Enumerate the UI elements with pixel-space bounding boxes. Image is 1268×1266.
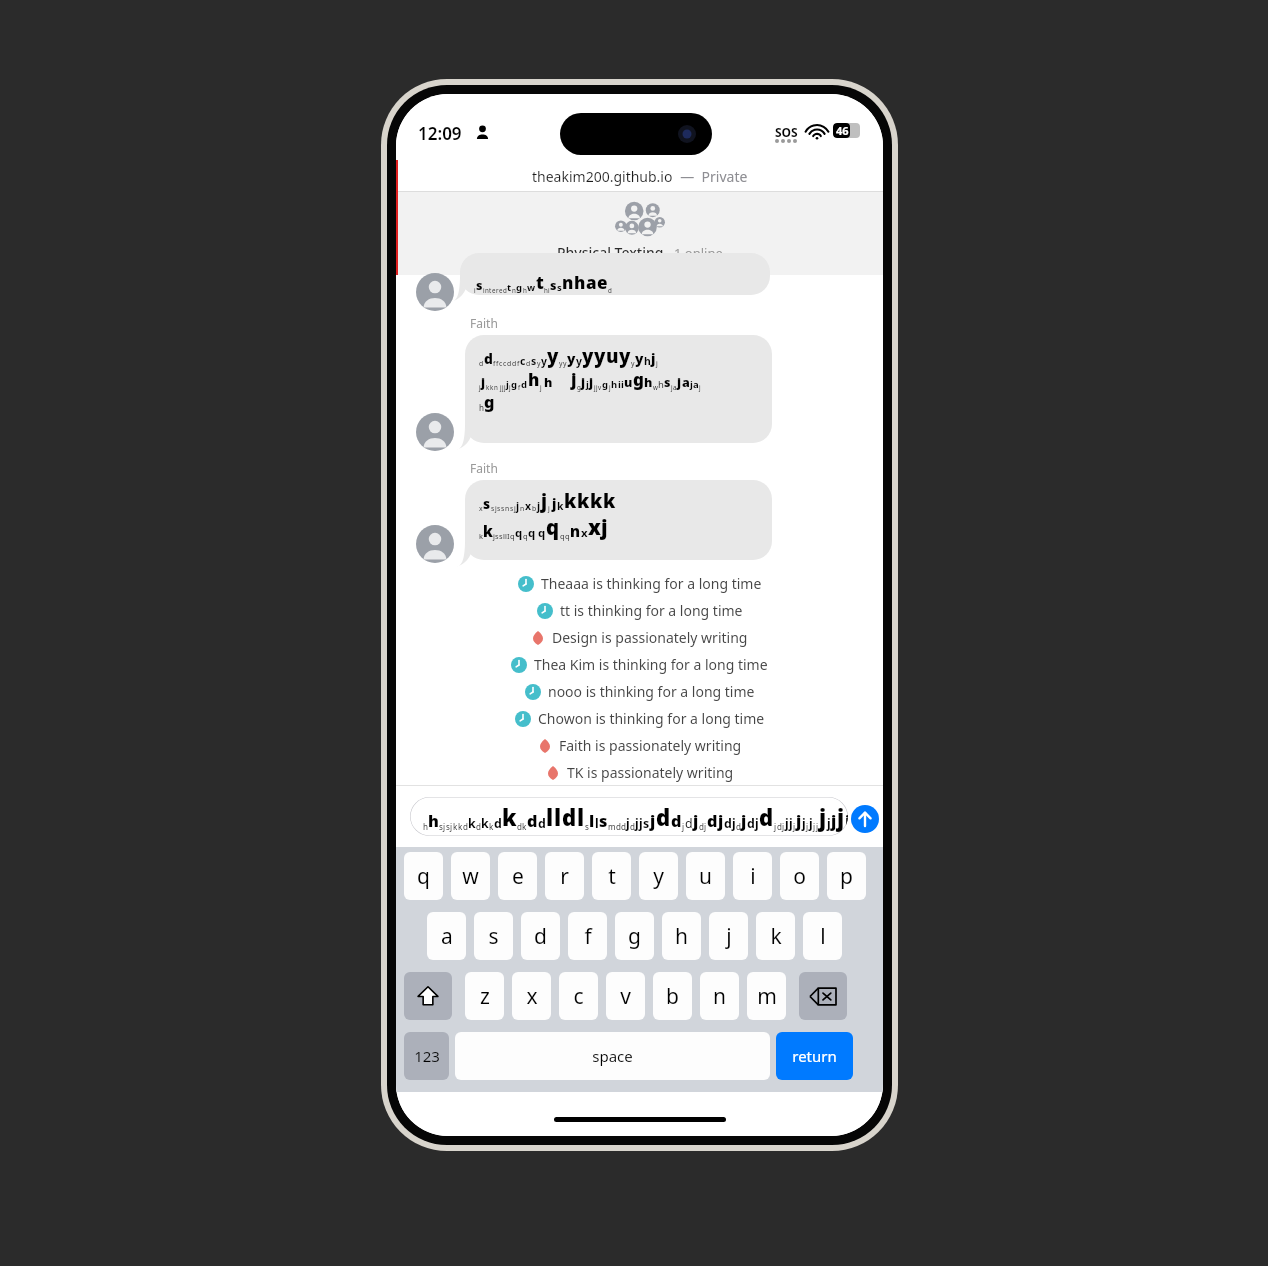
staticText: j — [782, 821, 785, 832]
staticText: g — [577, 383, 581, 391]
button[interactable]: l — [803, 912, 842, 960]
staticText: j — [831, 810, 837, 832]
button[interactable]: a — [427, 912, 466, 960]
staticText: j — [741, 810, 747, 832]
button[interactable]: Shift — [404, 972, 452, 1020]
staticText: q — [515, 525, 523, 541]
staticText: k — [522, 821, 527, 832]
staticText: j — [509, 383, 511, 391]
staticText: h — [423, 821, 428, 832]
staticText: k — [453, 821, 458, 832]
staticText: y — [576, 354, 582, 368]
button[interactable]: v — [606, 972, 645, 1020]
staticText: j — [594, 383, 596, 391]
staticText: k — [770, 922, 782, 951]
button[interactable]: x — [512, 972, 551, 1020]
staticText — [566, 368, 571, 391]
button[interactable]: j — [709, 912, 748, 960]
staticText: d — [484, 349, 493, 368]
staticText: s — [531, 354, 537, 368]
button[interactable]: h — [662, 912, 701, 960]
staticText: p — [840, 862, 853, 891]
button[interactable]: g — [615, 912, 654, 960]
button[interactable]: n — [700, 972, 739, 1020]
staticText: j — [699, 383, 701, 391]
staticText: i — [621, 378, 624, 391]
staticText: j — [514, 504, 516, 513]
button[interactable]: theakim200.github.io — [396, 160, 883, 192]
staticText: s — [550, 277, 557, 294]
button[interactable]: x — [465, 480, 772, 560]
button[interactable]: Physical Texting — [396, 192, 883, 275]
button[interactable]: t — [592, 852, 631, 900]
button[interactable]: w — [451, 852, 490, 900]
staticText: d — [507, 359, 512, 368]
staticText: h — [544, 286, 548, 294]
staticText: j — [650, 810, 656, 832]
staticText: e — [597, 271, 608, 294]
staticText: k — [468, 815, 476, 832]
staticText: b — [532, 504, 537, 513]
button[interactable]: i — [460, 253, 770, 295]
button[interactable]: e — [498, 852, 537, 900]
staticText: g — [602, 378, 609, 391]
staticText: y — [537, 359, 541, 368]
staticText: Faith — [470, 460, 498, 476]
staticText: i — [474, 286, 476, 294]
staticText: k — [479, 531, 483, 541]
button[interactable]: d — [465, 335, 772, 443]
button[interactable]: 123 — [404, 1032, 449, 1080]
button[interactable]: s — [474, 912, 513, 960]
button[interactable]: k — [756, 912, 795, 960]
staticText: a — [441, 922, 453, 951]
staticText: j — [704, 821, 707, 832]
staticText: j — [502, 383, 504, 391]
button[interactable]: d — [521, 912, 560, 960]
button[interactable]: z — [465, 972, 504, 1020]
staticText: k — [557, 499, 564, 513]
staticText: j — [671, 383, 673, 391]
staticText: j — [774, 821, 777, 832]
button[interactable]: y — [639, 852, 678, 900]
button[interactable]: b — [653, 972, 692, 1020]
button[interactable]: Backspace — [799, 972, 847, 1020]
staticText: n — [520, 504, 525, 513]
staticText: q — [528, 525, 536, 541]
staticText: k — [590, 488, 603, 513]
staticText: g — [484, 391, 495, 413]
staticText: u — [699, 862, 712, 891]
staticText: j — [718, 810, 724, 832]
staticText: k — [481, 815, 489, 832]
staticText: a — [586, 271, 597, 294]
button[interactable]: space — [455, 1032, 770, 1080]
button[interactable]: q — [404, 852, 443, 900]
button[interactable]: Send — [851, 805, 879, 833]
staticText: y — [563, 359, 567, 368]
staticText: n — [505, 504, 510, 513]
staticText: i — [548, 286, 550, 294]
staticText: d — [707, 810, 718, 832]
button[interactable]: f — [568, 912, 607, 960]
button[interactable]: h — [410, 797, 848, 836]
staticText: d — [777, 821, 782, 832]
staticText: return — [792, 1046, 837, 1066]
button[interactable]: p — [827, 852, 866, 900]
button[interactable]: return — [776, 1032, 853, 1080]
staticText: n — [512, 286, 516, 294]
button[interactable]: o — [780, 852, 819, 900]
staticText: j — [493, 531, 495, 541]
staticText: y — [653, 862, 664, 891]
button[interactable]: m — [747, 972, 786, 1020]
staticText: j — [443, 821, 446, 832]
staticText: d — [463, 821, 468, 832]
staticText: x — [581, 525, 588, 541]
button[interactable]: r — [545, 852, 584, 900]
staticText: k — [577, 488, 590, 513]
button[interactable]: u — [686, 852, 725, 900]
staticText: j — [816, 821, 819, 832]
button[interactable]: i — [733, 852, 772, 900]
staticText: SOS — [775, 124, 798, 140]
button[interactable]: c — [559, 972, 598, 1020]
